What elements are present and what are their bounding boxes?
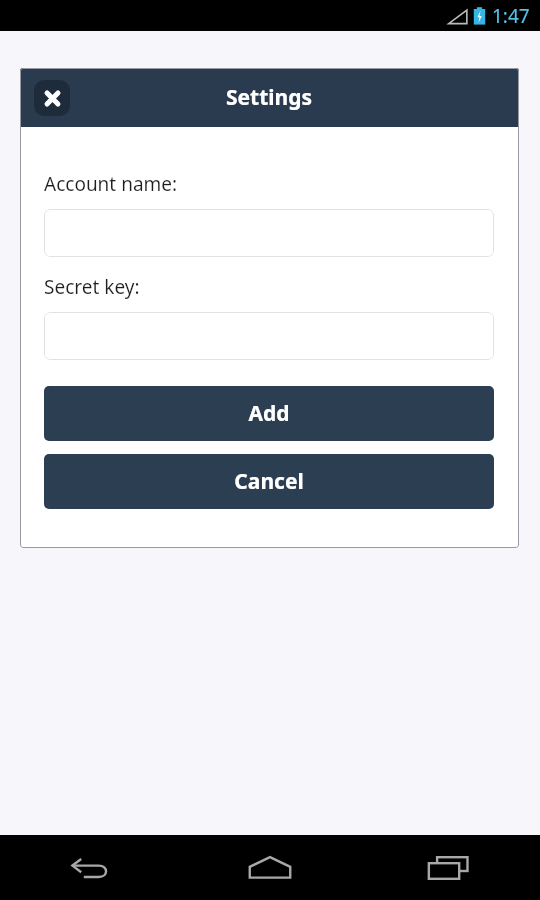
button[interactable]: Add: [44, 386, 494, 441]
button[interactable]: Text input: [44, 209, 494, 257]
button[interactable]: Recent apps: [360, 835, 540, 900]
button[interactable]: Home: [180, 835, 360, 900]
button[interactable]: Text input: [44, 312, 494, 360]
button[interactable]: Close: [34, 80, 70, 116]
staticText: Account name:: [44, 171, 178, 197]
button[interactable]: Cancel: [44, 454, 494, 509]
staticText: 1:47: [492, 3, 530, 29]
staticText: Secret key:: [44, 274, 140, 300]
staticText: Cancel: [234, 467, 304, 496]
staticText: Add: [248, 399, 290, 428]
button[interactable]: Back: [0, 835, 180, 900]
staticText: Settings: [226, 83, 313, 112]
